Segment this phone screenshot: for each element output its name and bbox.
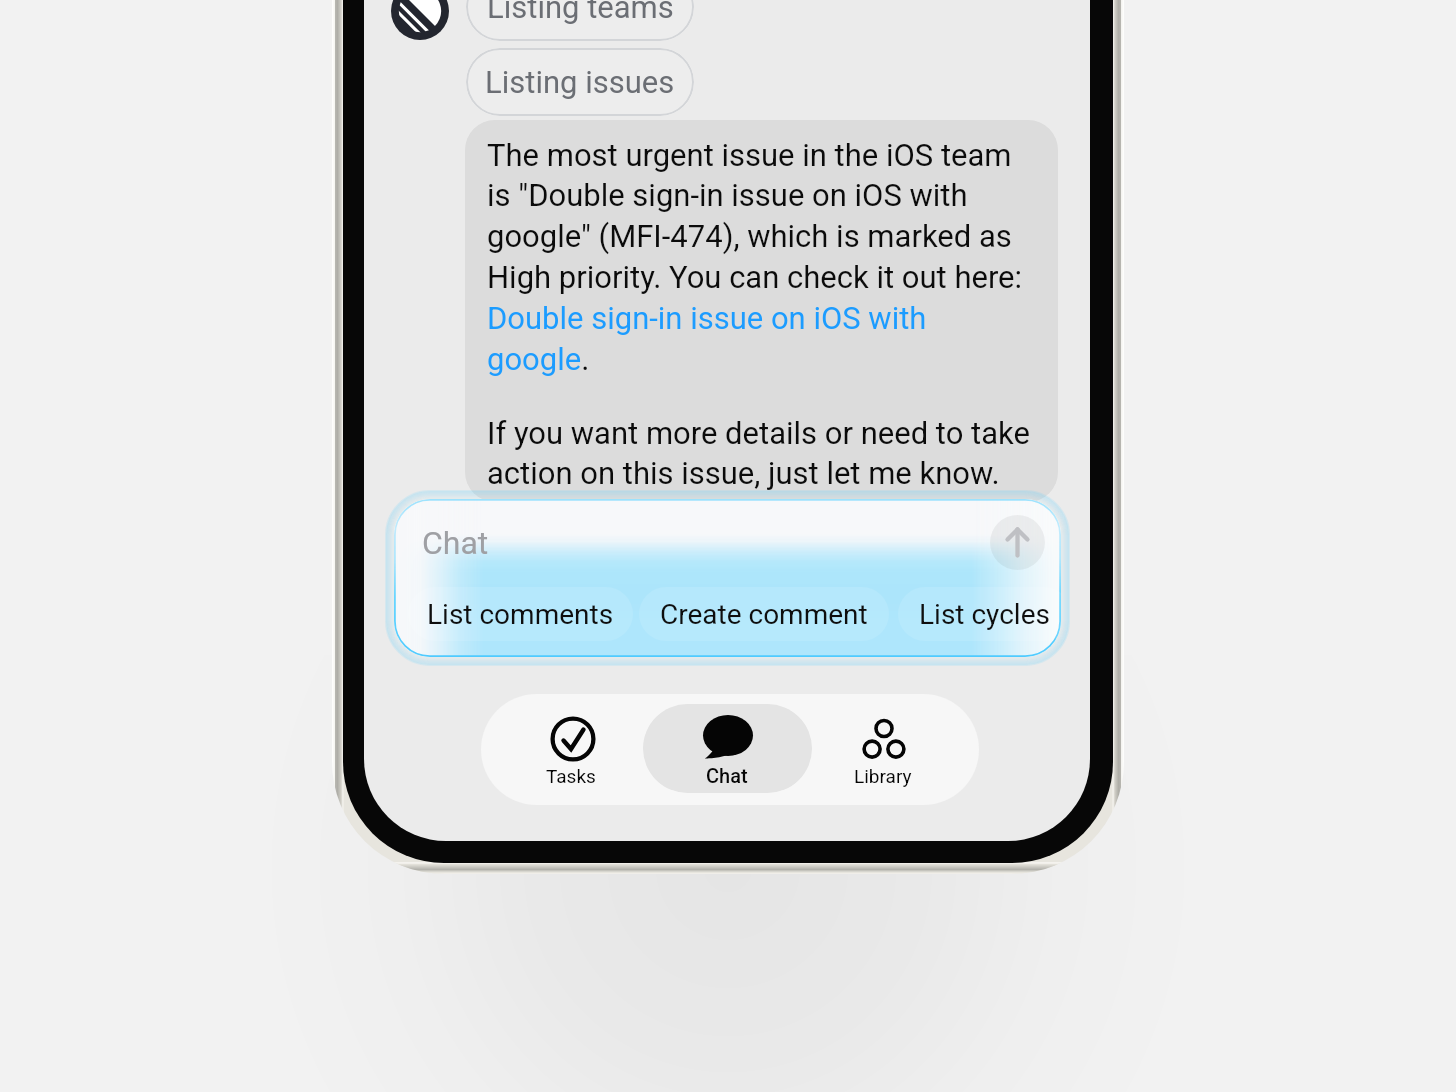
staticText: Listing teams — [487, 0, 674, 25]
staticText: List cycles — [919, 598, 1050, 631]
button[interactable]: Chat — [643, 704, 812, 793]
staticText: Create comment — [660, 598, 868, 631]
staticText: Chat — [422, 524, 489, 562]
button[interactable]: Send message — [990, 515, 1045, 570]
button[interactable]: Tasks — [481, 694, 647, 805]
button[interactable]: Listing teams — [466, 0, 694, 41]
button[interactable]: List cycles — [898, 587, 1061, 641]
staticText: Library — [854, 765, 912, 787]
staticText: Chat — [706, 764, 748, 787]
staticText: Tasks — [546, 765, 596, 787]
staticText: Listing issues — [485, 64, 675, 100]
button[interactable]: Library — [792, 694, 958, 805]
staticText: If you want more details or need to take… — [487, 415, 1033, 492]
staticText: List comments — [427, 598, 614, 631]
button[interactable]: Listing issues — [466, 48, 694, 116]
button[interactable]: List comments — [408, 587, 633, 641]
button[interactable]: Create comment — [639, 587, 889, 641]
staticText: The most urgent issue in the iOS team is… — [487, 137, 1033, 378]
